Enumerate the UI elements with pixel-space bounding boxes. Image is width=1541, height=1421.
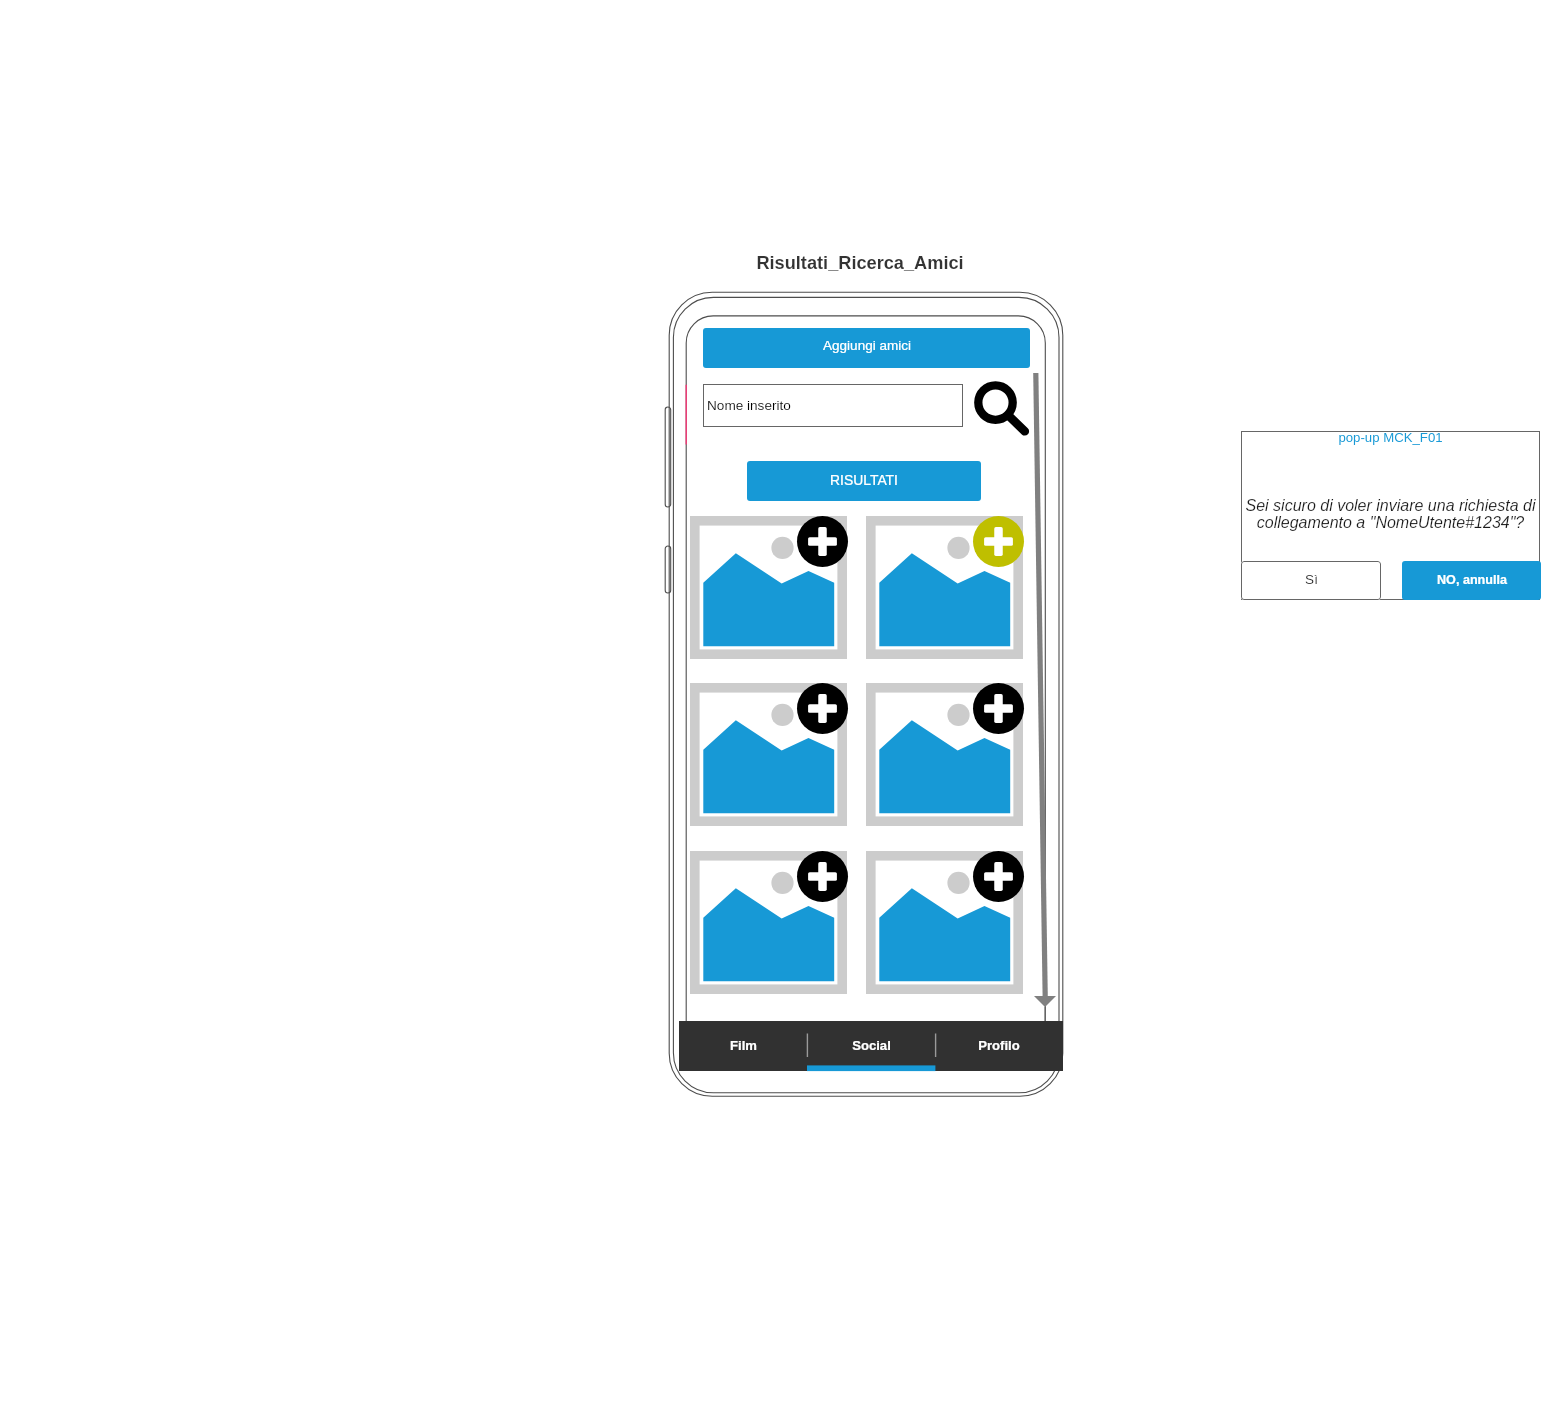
staticText: RISULTATI xyxy=(830,472,898,488)
staticText: Film xyxy=(730,1038,757,1053)
staticText: Sei sicuro di voler inviare una richiest… xyxy=(1243,497,1538,532)
button[interactable]: Aggiungi amico xyxy=(797,851,848,902)
button[interactable]: Aggiungi amici xyxy=(703,328,1030,368)
staticText: Social xyxy=(852,1038,891,1053)
button[interactable]: Richiesta inviata xyxy=(973,516,1024,567)
button[interactable]: Nome inserito xyxy=(703,384,963,427)
staticText: Profilo xyxy=(978,1038,1020,1053)
button[interactable]: Sì xyxy=(1241,561,1381,600)
button[interactable]: Cerca xyxy=(970,377,1028,435)
staticText: Risultati_Ricerca_Amici xyxy=(700,253,1020,273)
staticText: Aggiungi amici xyxy=(823,338,911,353)
button[interactable]: Aggiungi amico xyxy=(866,683,1023,826)
button[interactable]: Aggiungi amico xyxy=(690,516,847,659)
button[interactable]: Film xyxy=(679,1021,807,1071)
button[interactable]: Social xyxy=(807,1021,935,1071)
staticText: Nome inserito xyxy=(707,398,791,413)
button[interactable]: NO, annulla xyxy=(1402,561,1541,600)
staticText: NO, annulla xyxy=(1437,573,1507,587)
button[interactable]: Aggiungi amico xyxy=(866,851,1023,994)
button[interactable]: RISULTATI xyxy=(747,461,981,501)
button[interactable]: Aggiungi amico xyxy=(797,683,848,734)
staticText: pop-up MCK_F01 xyxy=(1241,430,1540,445)
button[interactable]: Aggiungi amico xyxy=(690,683,847,826)
staticText: Sì xyxy=(1305,572,1318,587)
button[interactable]: Aggiungi amico xyxy=(973,851,1024,902)
button[interactable]: Aggiungi amico xyxy=(797,516,848,567)
button[interactable]: Aggiungi amico xyxy=(973,683,1024,734)
button[interactable]: Aggiungi amico xyxy=(690,851,847,994)
button[interactable]: Richiesta inviata xyxy=(866,516,1023,659)
button[interactable]: Profilo xyxy=(935,1021,1063,1071)
